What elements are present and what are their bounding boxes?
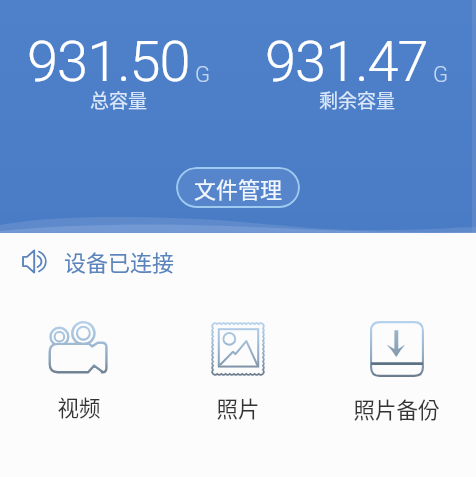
button[interactable]: 音量 <box>0 241 476 284</box>
staticText: 931.47 <box>265 29 428 95</box>
button[interactable]: 照片备份 <box>317 317 476 428</box>
button[interactable]: 视频 <box>0 317 158 426</box>
other: 照片 <box>210 321 266 376</box>
staticText: 文件管理 <box>194 172 283 204</box>
other: 视频 <box>49 321 109 375</box>
staticText: G <box>433 62 449 88</box>
staticText: 照片备份 <box>353 393 440 424</box>
button[interactable]: 文件管理 <box>176 167 300 208</box>
staticText: G <box>195 62 211 88</box>
staticText: 931.50 <box>27 29 190 95</box>
staticText: 视频 <box>57 391 101 422</box>
staticText: 总容量 <box>90 86 148 114</box>
staticText: 设备已连接 <box>64 245 175 277</box>
staticText: 照片 <box>216 392 260 423</box>
button[interactable]: 照片 <box>158 317 317 427</box>
other: 音量 <box>23 250 51 273</box>
other: 照片备份 <box>370 321 424 377</box>
staticText: 剩余容量 <box>319 86 396 114</box>
